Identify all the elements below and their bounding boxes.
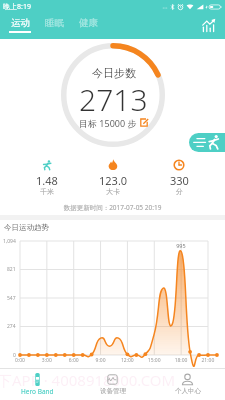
- button[interactable]: 个人中心: [150, 368, 225, 400]
- staticText: 运动: [11, 17, 30, 29]
- button[interactable]: Statistics: [200, 17, 217, 34]
- button[interactable]: Hero Band: [0, 368, 75, 400]
- staticText: 下APP · 4008918000.COM: [0, 370, 176, 390]
- button[interactable]: 330: [146, 152, 212, 197]
- staticText: 数据更新时间：2017-07-05 20:19: [0, 203, 225, 212]
- staticText: 分: [176, 187, 183, 196]
- staticText: 1.48: [36, 173, 58, 188]
- staticText: 330: [170, 173, 189, 188]
- staticText: Hero Band: [21, 387, 54, 396]
- button[interactable]: 1.48: [13, 152, 80, 197]
- staticText: 睡眠: [45, 17, 64, 29]
- staticText: 2713: [79, 79, 148, 120]
- staticText: 今日步数: [92, 66, 136, 80]
- button[interactable]: Edit step goal: [140, 119, 148, 127]
- staticText: 123.0: [99, 173, 128, 188]
- staticText: 设备管理: [100, 387, 126, 395]
- staticText: 晚上8:19: [3, 2, 31, 12]
- staticText: 今日运动趋势: [4, 223, 49, 232]
- staticText: 千米: [40, 187, 54, 196]
- button[interactable]: 设备管理: [75, 368, 150, 400]
- button[interactable]: 123.0: [80, 152, 146, 197]
- staticText: 个人中心: [175, 387, 201, 395]
- staticText: 大卡: [106, 187, 120, 196]
- button[interactable]: 健康: [71, 13, 105, 33]
- button[interactable]: 睡眠: [37, 13, 71, 33]
- staticText: 目标 15000 步: [79, 117, 137, 129]
- staticText: 健康: [79, 17, 98, 29]
- button[interactable]: Start run: [189, 133, 225, 152]
- button[interactable]: 运动: [3, 13, 37, 33]
